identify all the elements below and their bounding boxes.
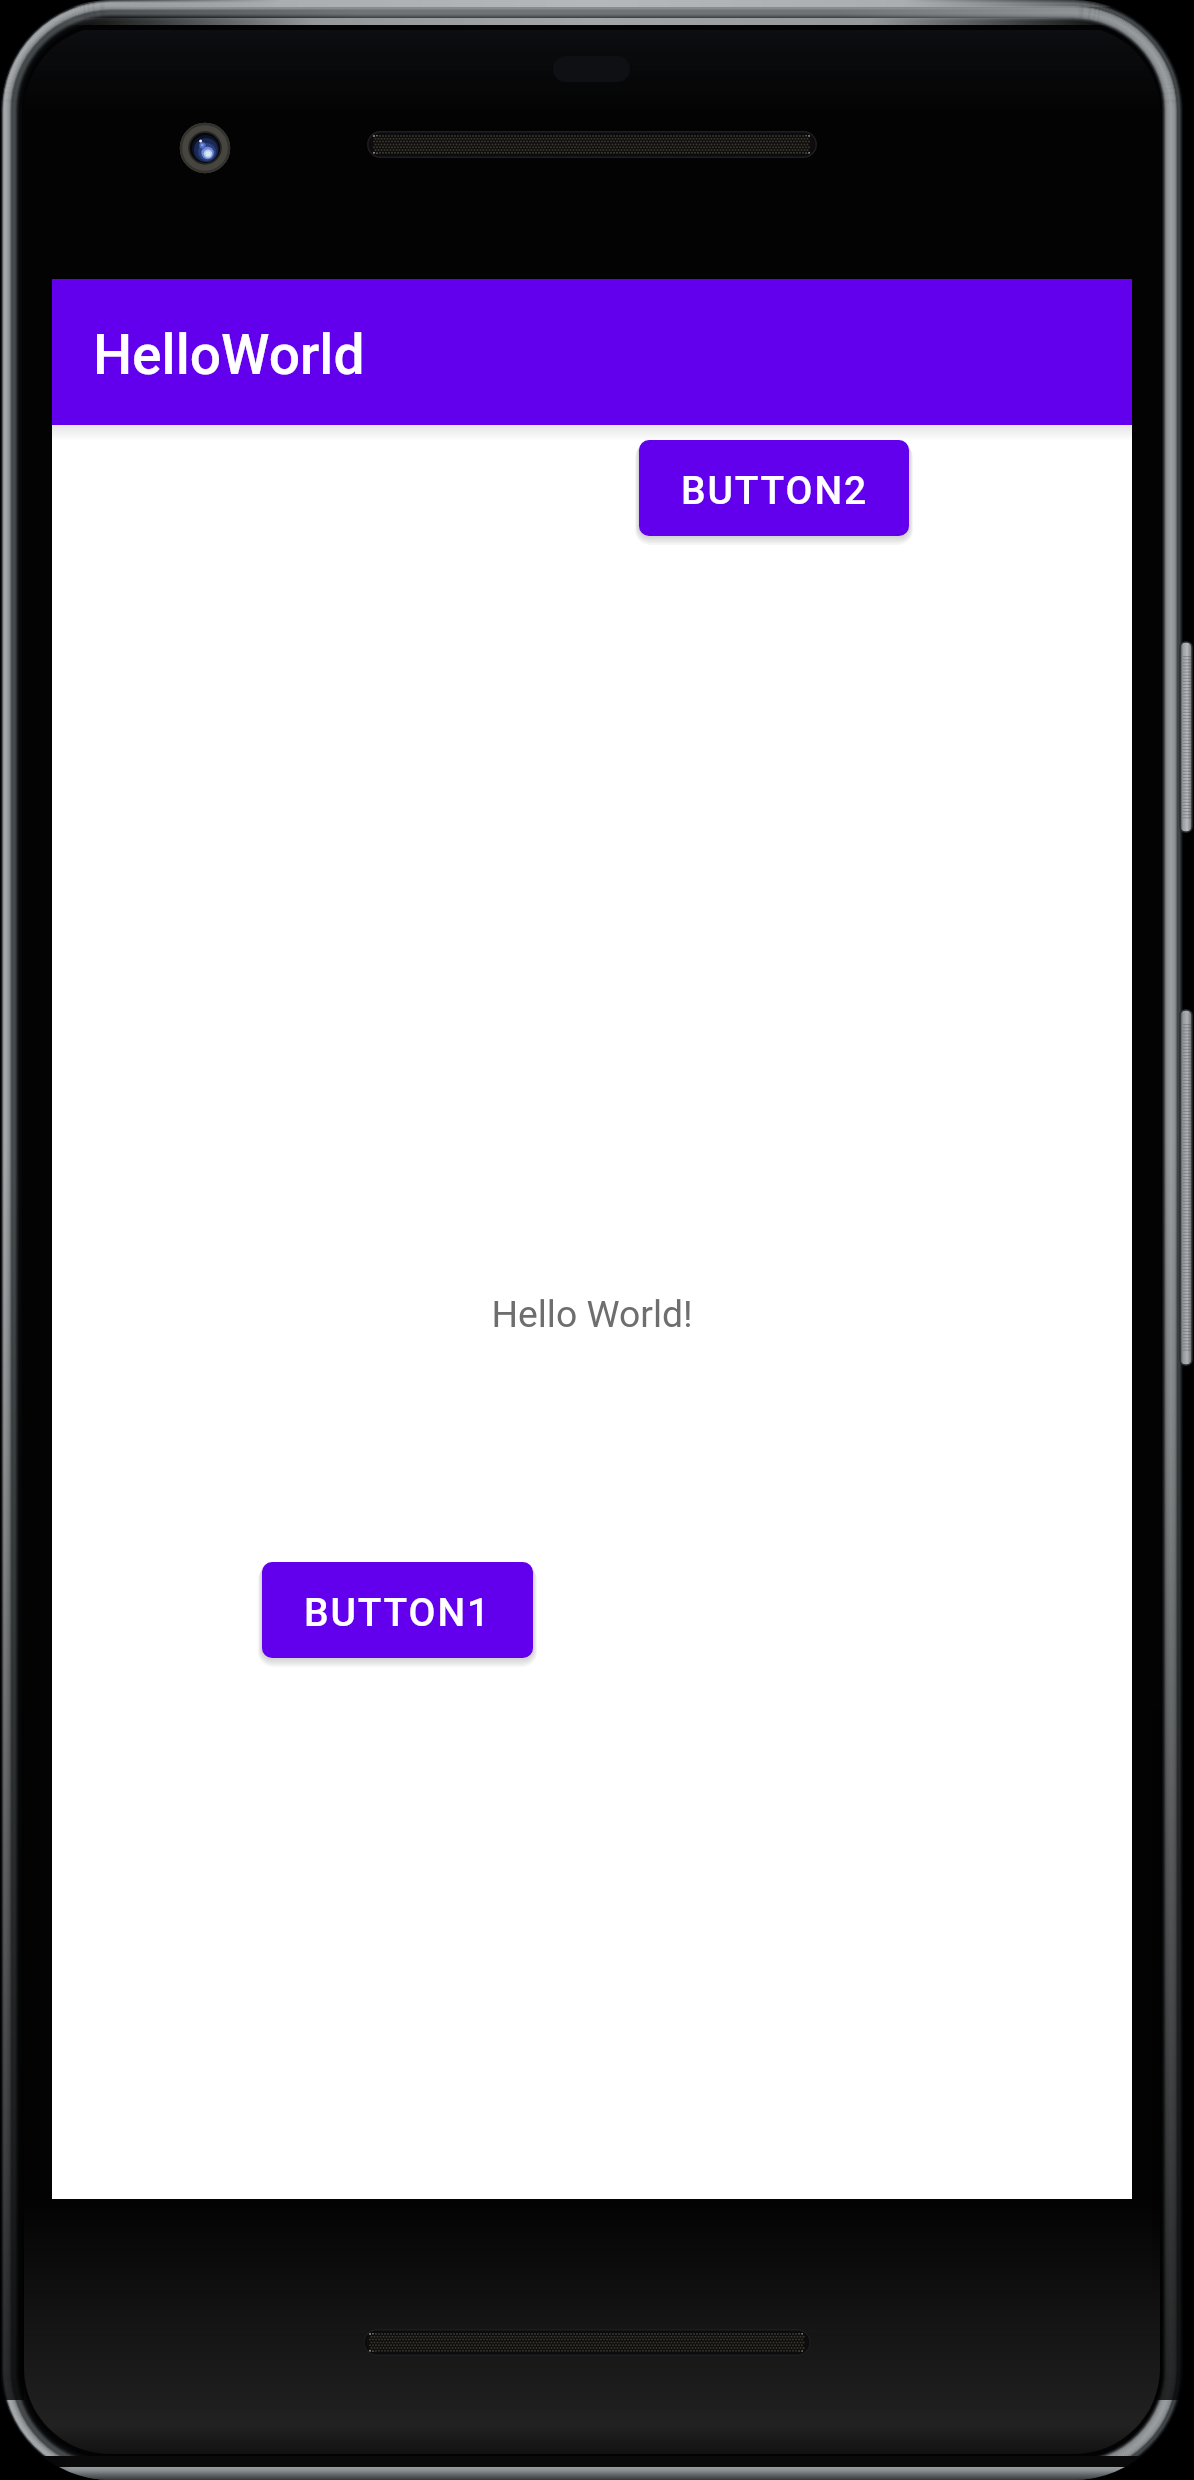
staticText: Hello World! [491, 1292, 693, 1336]
staticText: BUTTON1 [304, 1590, 491, 1636]
button[interactable]: BUTTON1 [262, 1562, 533, 1658]
button[interactable]: BUTTON2 [639, 440, 909, 536]
button[interactable]: Volume [1180, 1010, 1194, 1365]
staticText: HelloWorld [93, 323, 365, 387]
staticText: BUTTON2 [681, 468, 868, 514]
button[interactable]: Power [1180, 642, 1194, 832]
